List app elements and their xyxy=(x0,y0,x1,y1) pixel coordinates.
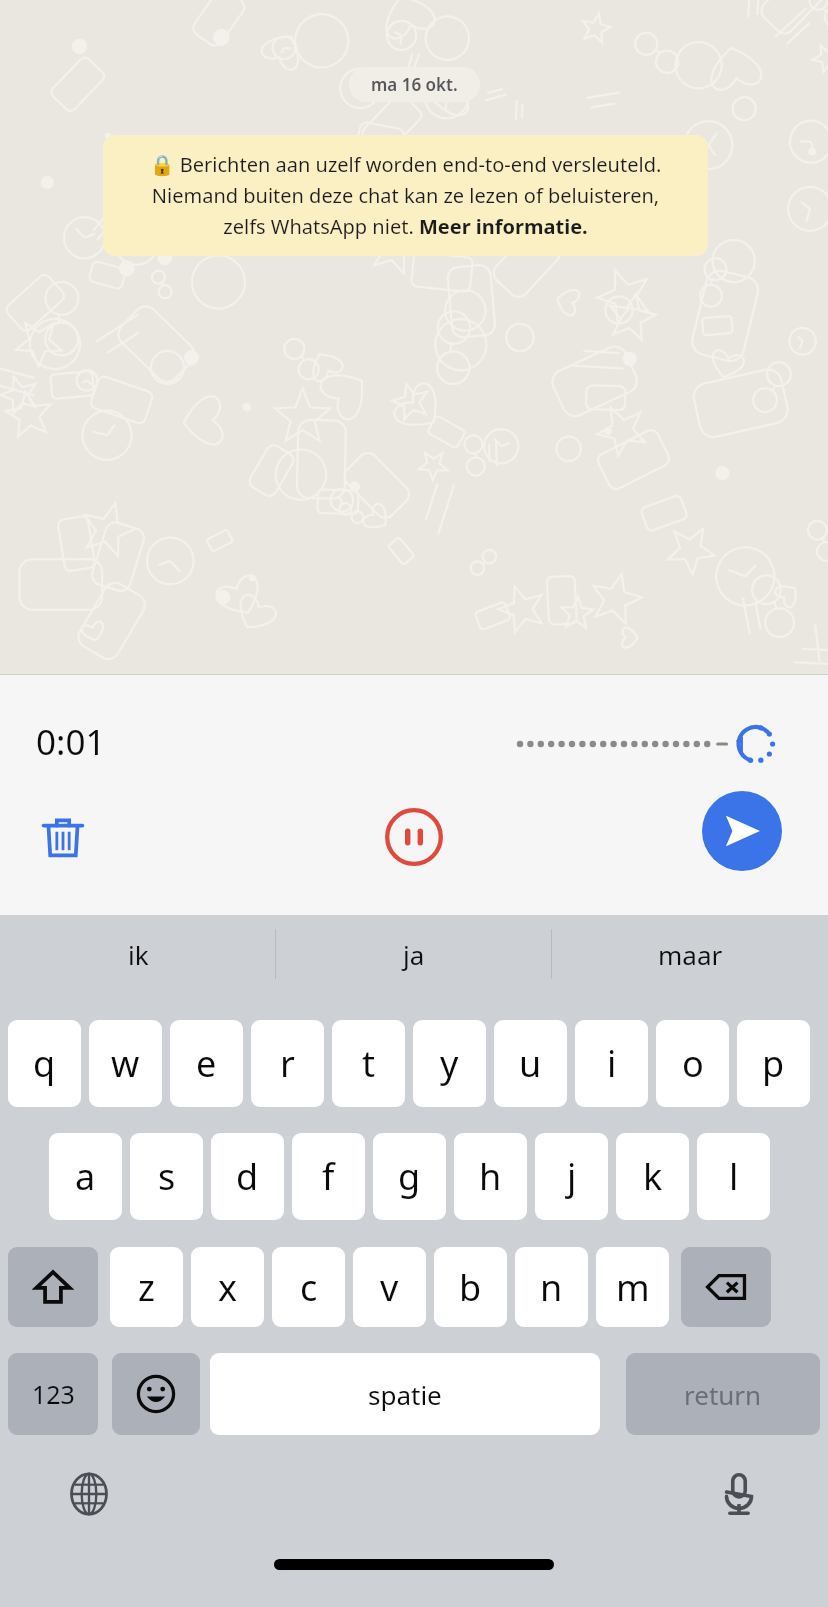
button[interactable]: Send xyxy=(702,791,782,871)
staticText: h xyxy=(479,1152,502,1201)
staticText: z xyxy=(138,1263,155,1312)
staticText: v xyxy=(380,1263,399,1312)
button[interactable]: j xyxy=(535,1133,608,1220)
staticText: b xyxy=(459,1263,482,1312)
button[interactable]: Change keyboard xyxy=(58,1463,120,1525)
button[interactable]: m xyxy=(596,1247,669,1327)
button[interactable]: u xyxy=(494,1020,567,1107)
button[interactable]: i xyxy=(575,1020,648,1107)
button[interactable]: ma 16 okt. xyxy=(349,67,480,102)
staticText: x xyxy=(218,1263,238,1312)
button[interactable]: s xyxy=(130,1133,203,1220)
button[interactable]: ik xyxy=(0,915,276,993)
button[interactable]: e xyxy=(170,1020,243,1107)
button[interactable]: g xyxy=(373,1133,446,1220)
staticText: return xyxy=(684,1377,762,1412)
staticText: y xyxy=(440,1039,459,1088)
staticText: n xyxy=(540,1263,563,1312)
button[interactable]: z xyxy=(110,1247,183,1327)
button[interactable]: Pause recording xyxy=(377,800,451,874)
staticText: g xyxy=(398,1152,421,1201)
button[interactable]: r xyxy=(251,1020,324,1107)
button[interactable]: 🔒 Berichten aan uzelf worden end-to-end … xyxy=(103,135,708,256)
staticText: c xyxy=(300,1263,318,1312)
button[interactable]: n xyxy=(515,1247,588,1327)
button[interactable]: l xyxy=(697,1133,770,1220)
staticText: maar xyxy=(658,937,723,972)
staticText: w xyxy=(111,1039,140,1088)
staticText: j xyxy=(567,1152,577,1201)
button[interactable]: d xyxy=(211,1133,284,1220)
button[interactable]: maar xyxy=(552,915,828,993)
button[interactable]: p xyxy=(737,1020,810,1107)
staticText: k xyxy=(643,1152,663,1201)
staticText: q xyxy=(33,1039,56,1088)
button[interactable]: h xyxy=(454,1133,527,1220)
staticText: 0:01 xyxy=(36,718,106,766)
button[interactable]: Dictation xyxy=(708,1463,770,1525)
staticText: ma 16 okt. xyxy=(371,73,458,96)
button[interactable]: ja xyxy=(276,915,552,993)
staticText: 🔒 Berichten aan uzelf worden end-to-end … xyxy=(129,151,682,240)
staticText: p xyxy=(762,1039,785,1088)
staticText: m xyxy=(616,1263,650,1312)
button[interactable]: Backspace xyxy=(681,1247,771,1327)
button[interactable]: return xyxy=(626,1353,820,1435)
staticText: ja xyxy=(403,937,425,972)
button[interactable]: Playback speed 1x xyxy=(505,718,805,770)
button[interactable]: w xyxy=(89,1020,162,1107)
staticText: o xyxy=(682,1039,704,1088)
staticText: ik xyxy=(128,937,149,972)
staticText: 1 xyxy=(734,728,748,761)
staticText: spatie xyxy=(368,1377,442,1412)
staticText: f xyxy=(322,1152,335,1201)
button[interactable]: a xyxy=(49,1133,122,1220)
button[interactable]: Shift xyxy=(8,1247,98,1327)
staticText: 123 xyxy=(32,1377,75,1411)
button[interactable]: spatie xyxy=(210,1353,600,1435)
staticText: u xyxy=(519,1039,542,1088)
staticText: t xyxy=(362,1039,375,1088)
button[interactable]: x xyxy=(191,1247,264,1327)
button[interactable]: y xyxy=(413,1020,486,1107)
button[interactable]: o xyxy=(656,1020,729,1107)
button[interactable]: Emoji xyxy=(112,1353,200,1435)
staticText: s xyxy=(158,1152,176,1201)
staticText: a xyxy=(75,1152,96,1201)
staticText: l xyxy=(729,1152,739,1201)
button[interactable]: 123 xyxy=(8,1353,98,1435)
staticText: e xyxy=(196,1039,217,1088)
button[interactable]: t xyxy=(332,1020,405,1107)
button[interactable]: b xyxy=(434,1247,507,1327)
staticText: d xyxy=(236,1152,259,1201)
button[interactable]: f xyxy=(292,1133,365,1220)
button[interactable]: c xyxy=(272,1247,345,1327)
button[interactable]: q xyxy=(8,1020,81,1107)
button[interactable]: Delete recording xyxy=(26,800,100,874)
staticText: r xyxy=(280,1039,295,1088)
button[interactable]: v xyxy=(353,1247,426,1327)
button[interactable]: k xyxy=(616,1133,689,1220)
staticText: i xyxy=(607,1039,617,1088)
